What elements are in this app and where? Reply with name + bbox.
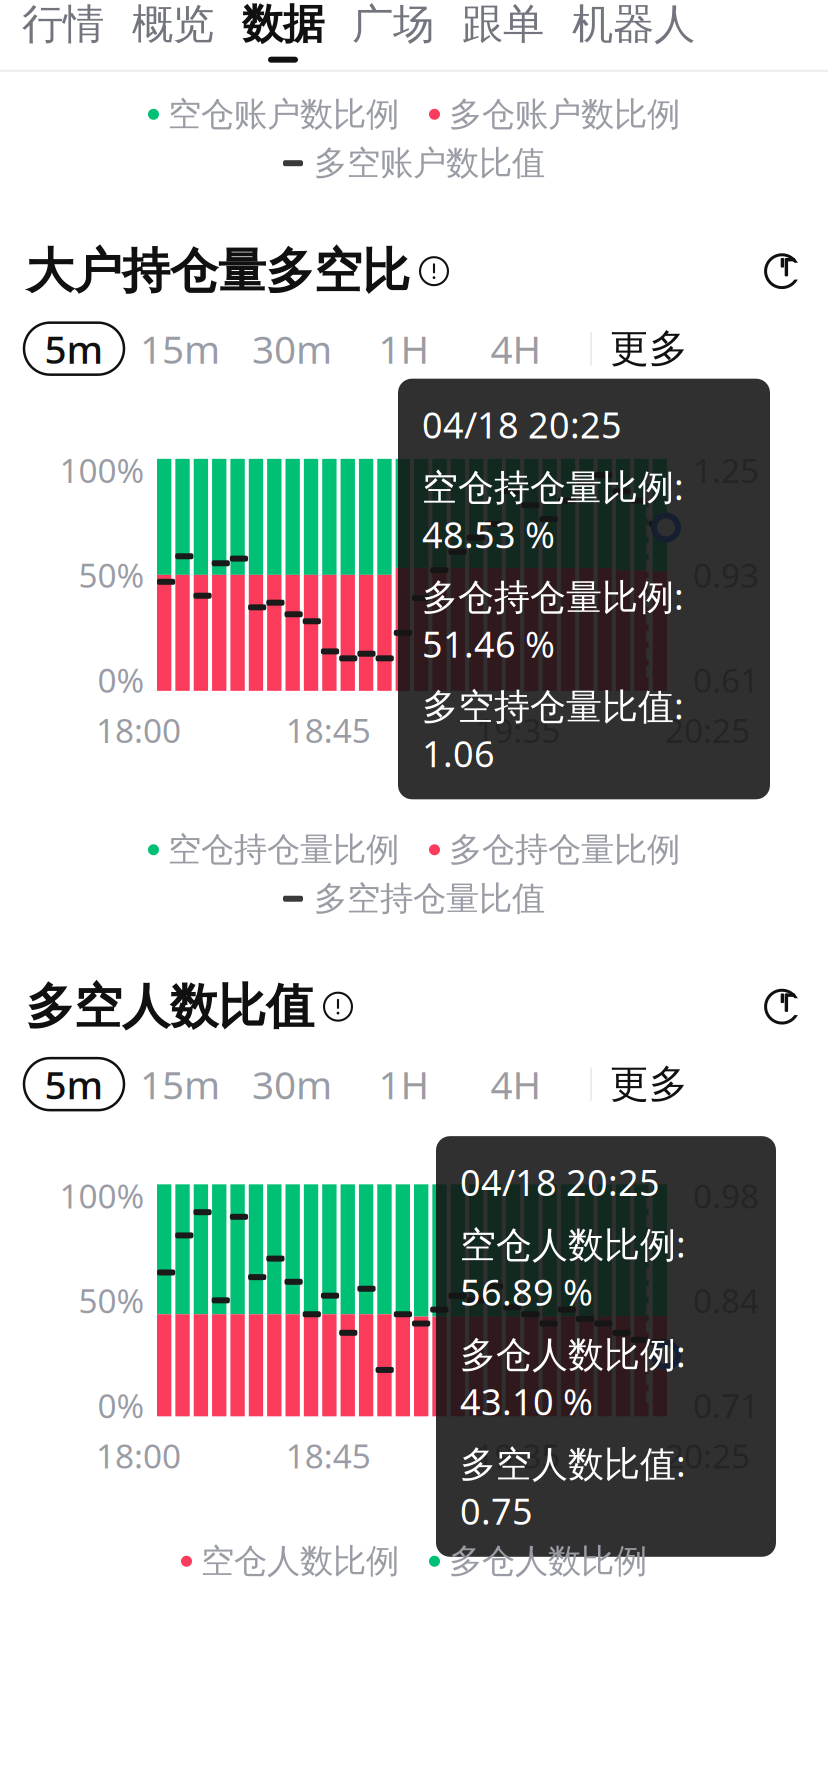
staticText: 0.93 <box>693 553 759 597</box>
button[interactable]: 1H <box>348 1058 460 1110</box>
staticText: 空仓账户数比例 <box>168 94 399 135</box>
staticText: 多仓人数比例: 43.10 % <box>460 1330 686 1425</box>
staticText: 18:45 <box>286 708 371 752</box>
button[interactable]: 30m <box>236 323 348 375</box>
staticText: 19:35 <box>475 708 560 752</box>
staticText: 跟单 <box>462 0 544 50</box>
staticText: 0% <box>97 1383 144 1427</box>
staticText: 100% <box>59 1173 144 1218</box>
staticText: 数据 <box>242 0 324 50</box>
staticText: 1.25 <box>693 448 759 492</box>
staticText: 0.84 <box>693 1278 759 1322</box>
staticText: 20:25 <box>665 1433 750 1478</box>
staticText: 大户持仓量多空比 <box>26 242 410 301</box>
staticText: 更多 <box>610 325 688 372</box>
staticText: 多仓持仓量比例 <box>449 829 680 870</box>
button[interactable]: 数据 <box>242 0 324 63</box>
staticText: 5m <box>44 1058 103 1110</box>
staticText: 多空人数比值 <box>26 977 314 1036</box>
staticText: 0% <box>97 658 144 702</box>
staticText: 04/18 20:25 <box>460 1158 660 1206</box>
staticText: 19:35 <box>475 1433 560 1478</box>
staticText: 15m <box>140 323 220 374</box>
button[interactable]: 1H <box>348 323 460 375</box>
staticText: 多空账户数比值 <box>314 143 545 184</box>
staticText: 18:00 <box>96 1433 181 1478</box>
staticText: 1H <box>378 1058 429 1110</box>
button[interactable]: 说明 <box>420 257 448 285</box>
button[interactable]: 分享 <box>762 251 802 291</box>
button[interactable]: 跟单 <box>462 0 544 63</box>
staticText: 50% <box>78 553 144 597</box>
staticText: 30m <box>252 323 332 374</box>
staticText: 更多 <box>610 1060 688 1108</box>
staticText: 4H <box>490 323 541 374</box>
button[interactable]: 5m <box>24 323 124 375</box>
staticText: 空仓持仓量比例: 48.53 % <box>422 462 684 558</box>
staticText: 100% <box>59 448 144 492</box>
button[interactable]: 说明 <box>324 993 352 1021</box>
staticText: 概览 <box>132 0 214 50</box>
staticText: 1H <box>378 323 429 374</box>
button[interactable]: 广场 <box>352 0 434 63</box>
staticText: 18:45 <box>286 1433 371 1478</box>
button[interactable]: 机器人 <box>572 0 695 63</box>
button[interactable]: 概览 <box>132 0 214 63</box>
staticText: 0.61 <box>693 658 759 702</box>
staticText: 0.71 <box>693 1383 759 1427</box>
button[interactable]: 5m <box>24 1058 124 1110</box>
staticText: 5m <box>44 323 103 374</box>
staticText: 空仓人数比例: 56.89 % <box>460 1220 686 1315</box>
button[interactable]: 行情 <box>22 0 104 63</box>
staticText: 多仓持仓量比例: 51.46 % <box>422 572 684 668</box>
staticText: 多空持仓量比值: 1.06 <box>422 682 684 777</box>
staticText: 多空持仓量比值 <box>314 878 545 919</box>
staticText: 30m <box>252 1058 332 1110</box>
staticText: 20:25 <box>665 708 750 752</box>
staticText: 多仓人数比例 <box>449 1541 647 1582</box>
staticText: 4H <box>490 1058 541 1110</box>
staticText: 15m <box>140 1058 220 1110</box>
staticText: 多空人数比值: 0.75 <box>460 1439 686 1535</box>
button[interactable]: 4H <box>460 1058 572 1110</box>
button[interactable]: 分享 <box>762 987 802 1027</box>
staticText: 04/18 20:25 <box>422 401 622 448</box>
staticText: 18:00 <box>96 708 181 752</box>
staticText: 行情 <box>22 0 104 50</box>
staticText: 0.98 <box>693 1173 759 1218</box>
button[interactable]: 30m <box>236 1058 348 1110</box>
button[interactable]: 更多 <box>610 1060 688 1108</box>
button[interactable]: 15m <box>124 1058 236 1110</box>
button[interactable]: 15m <box>124 323 236 375</box>
staticText: 多仓账户数比例 <box>449 94 680 135</box>
staticText: 广场 <box>352 0 434 50</box>
button[interactable]: 更多 <box>610 325 688 372</box>
staticText: 空仓持仓量比例 <box>168 829 399 870</box>
staticText: 50% <box>78 1278 144 1322</box>
button[interactable]: 4H <box>460 323 572 375</box>
staticText: 机器人 <box>572 0 695 50</box>
staticText: 空仓人数比例 <box>201 1541 399 1582</box>
